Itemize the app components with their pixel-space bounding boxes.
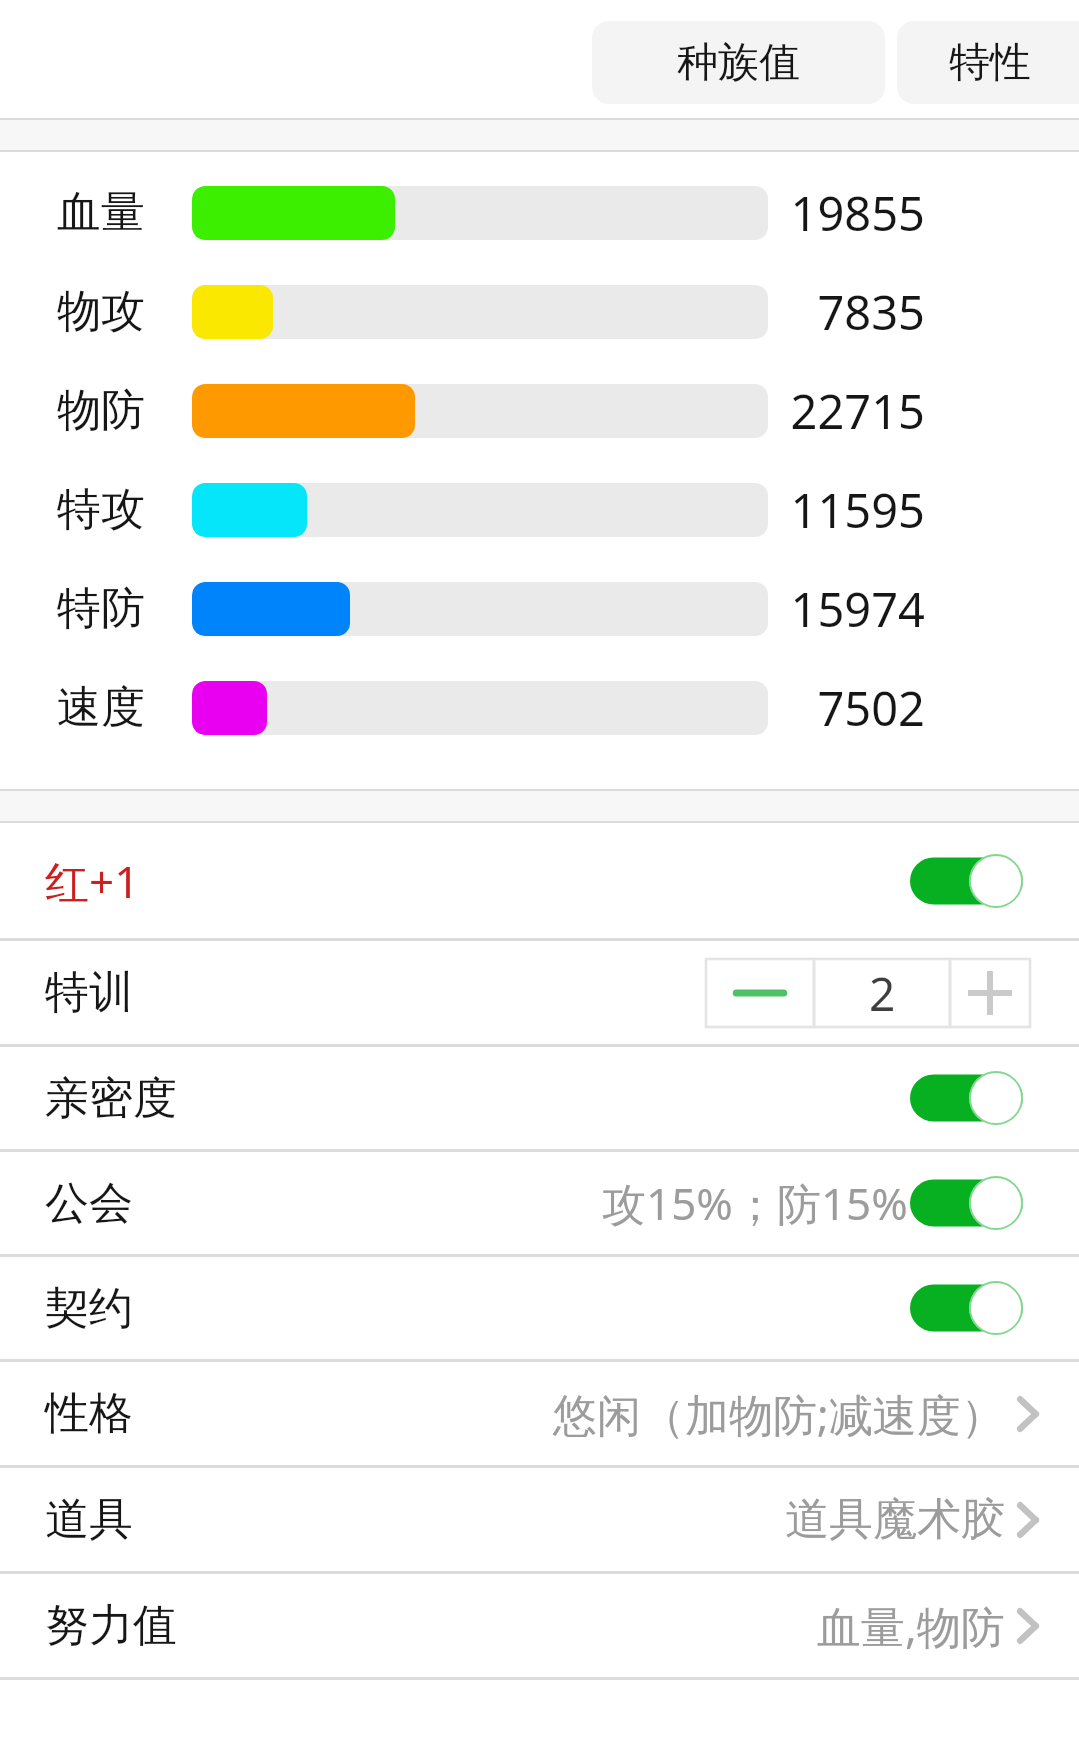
button[interactable]: 性格 (0, 1362, 1079, 1465)
button[interactable]: 亲密度 (0, 1047, 1079, 1149)
staticText: 7835 (817, 280, 925, 344)
staticText: 特攻 (57, 482, 145, 537)
button[interactable]: 道具 (0, 1468, 1079, 1571)
button[interactable]: 契约 (0, 1257, 1079, 1359)
staticText: 悠闲（加物防;减速度） (553, 1384, 1005, 1444)
staticText: 性格 (45, 1386, 133, 1441)
button[interactable]: 努力值 (0, 1574, 1079, 1677)
button[interactable]: 种族值 (592, 21, 885, 104)
staticText: 特训 (45, 965, 133, 1020)
staticText: 血量,物防 (817, 1596, 1005, 1656)
staticText: 攻15%；防15% (602, 1173, 908, 1233)
button[interactable]: 公会 (0, 1152, 1079, 1254)
staticText: 努力值 (45, 1598, 177, 1653)
staticText: 道具魔术胶 (785, 1492, 1005, 1547)
staticText: 19855 (790, 181, 925, 245)
button[interactable]: Toggle (910, 1176, 1023, 1230)
button[interactable]: Toggle (910, 1281, 1023, 1335)
button[interactable]: Decrease (706, 959, 814, 1027)
staticText: 公会 (45, 1176, 133, 1231)
staticText: 22715 (790, 379, 925, 443)
button[interactable]: 特性 (897, 21, 1079, 104)
button[interactable]: 红+1 (0, 823, 1079, 938)
staticText: 速度 (57, 680, 145, 735)
button[interactable]: Toggle (910, 1071, 1023, 1125)
staticText: 物攻 (57, 284, 145, 339)
button[interactable]: Increase (950, 959, 1030, 1027)
staticText: 7502 (817, 676, 925, 740)
staticText: 种族值 (677, 37, 800, 89)
staticText: 契约 (45, 1281, 133, 1336)
staticText: 血量 (57, 185, 145, 240)
staticText: 特防 (57, 581, 145, 636)
staticText: 亲密度 (45, 1071, 177, 1126)
staticText: 15974 (790, 577, 925, 641)
staticText: 物防 (57, 383, 145, 438)
button[interactable]: Toggle (910, 854, 1023, 908)
staticText: 2 (869, 962, 896, 1025)
staticText: 特性 (949, 37, 1031, 89)
staticText: 红+1 (45, 851, 140, 911)
staticText: 11595 (790, 478, 925, 542)
staticText: 道具 (45, 1492, 133, 1547)
